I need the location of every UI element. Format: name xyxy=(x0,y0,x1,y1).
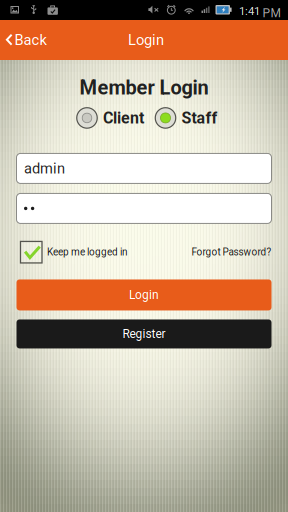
staticText: admin xyxy=(24,160,65,177)
button[interactable]: Back xyxy=(0,20,56,60)
button[interactable]: Staff xyxy=(155,107,217,128)
button[interactable]: Forgot Password? xyxy=(191,246,271,258)
staticText: Member Login xyxy=(79,76,208,99)
staticText: 1:41 xyxy=(239,4,260,18)
staticText: Keep me logged in xyxy=(47,246,128,258)
staticText: Forgot Password? xyxy=(191,246,271,258)
staticText: Login xyxy=(129,288,159,302)
staticText: Login xyxy=(128,31,164,49)
button[interactable]: Client xyxy=(76,107,144,128)
button[interactable]: Login xyxy=(16,279,271,310)
staticText: Staff xyxy=(181,109,217,127)
staticText: Register xyxy=(122,327,165,341)
button[interactable]: Register xyxy=(16,319,271,348)
staticText: Back xyxy=(14,31,46,49)
staticText: PM xyxy=(262,6,280,20)
staticText: Client xyxy=(103,109,144,127)
button[interactable]: Keep me logged in xyxy=(20,241,128,263)
